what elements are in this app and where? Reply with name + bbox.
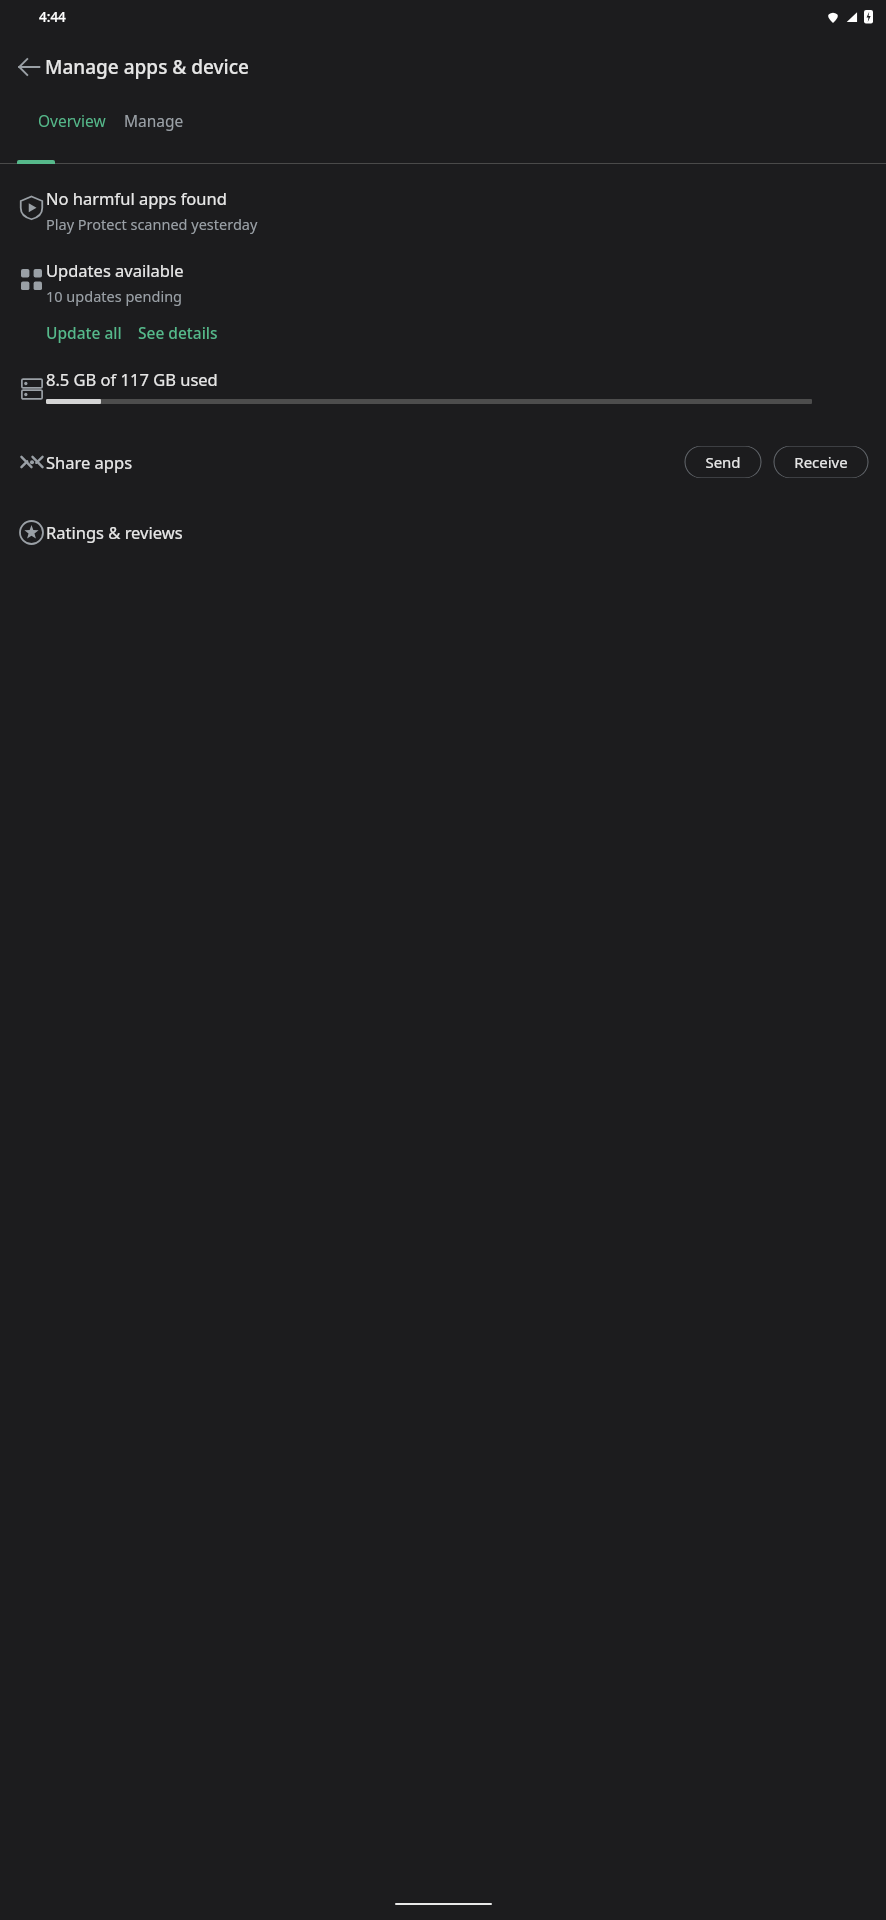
staticText: Update all	[46, 322, 122, 343]
staticText: Manage apps & device	[45, 54, 249, 80]
staticText: Updates available	[46, 259, 184, 281]
button[interactable]: Receive	[773, 446, 869, 478]
staticText: 8.5 GB of 117 GB used	[46, 368, 218, 390]
staticText: Share apps	[46, 451, 133, 473]
button[interactable]: Update all	[46, 318, 122, 347]
staticText: No harmful apps found	[46, 187, 227, 209]
button[interactable]: Overview	[38, 101, 106, 140]
button[interactable]: Updates available	[46, 259, 184, 306]
button[interactable]: Ratings & reviews	[0, 509, 886, 555]
button[interactable]: Share apps	[0, 435, 886, 489]
button[interactable]: No harmful apps found	[0, 181, 886, 240]
staticText: See details	[138, 322, 218, 343]
staticText: Ratings & reviews	[46, 521, 183, 543]
staticText: Manage	[124, 110, 184, 131]
button[interactable]: Send	[684, 446, 762, 478]
button[interactable]: 8.5 GB of 117 GB used	[0, 368, 886, 409]
staticText: Send	[705, 452, 741, 472]
staticText: 10 updates pending	[46, 286, 183, 306]
button[interactable]: Back	[5, 43, 53, 91]
staticText: 4:44	[39, 8, 66, 26]
staticText: Overview	[38, 110, 106, 131]
staticText: Play Protect scanned yesterday	[46, 214, 258, 234]
staticText: Receive	[794, 452, 848, 472]
button[interactable]: See details	[138, 318, 218, 347]
button[interactable]: Manage	[124, 101, 184, 140]
